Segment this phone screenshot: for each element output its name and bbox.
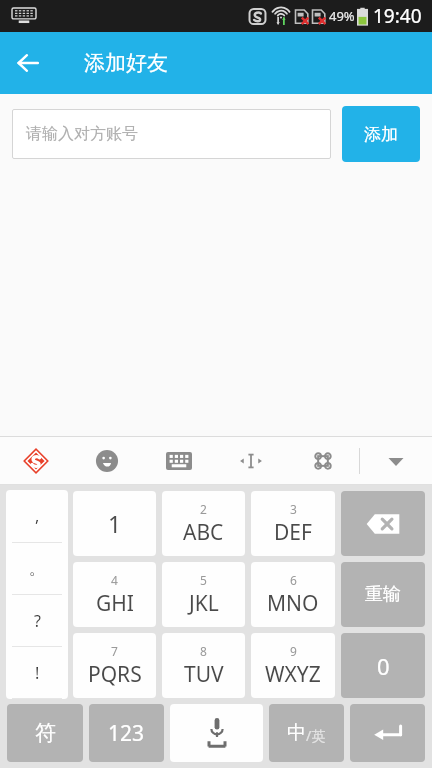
button[interactable]: Keyboard layout bbox=[143, 437, 215, 484]
staticText: 0 bbox=[377, 651, 390, 681]
button[interactable]: 重输 bbox=[341, 562, 425, 627]
button[interactable]: 9 bbox=[251, 633, 335, 698]
button[interactable]: Hide keyboard bbox=[360, 437, 432, 484]
button[interactable]: Enter bbox=[350, 704, 425, 762]
button[interactable]: 中英切换 bbox=[269, 704, 344, 762]
staticText: 符 bbox=[35, 720, 56, 746]
button[interactable]: 0 bbox=[341, 633, 425, 698]
button[interactable]: 添加 bbox=[342, 106, 420, 162]
button[interactable]: 5 bbox=[162, 562, 245, 627]
staticText: /英 bbox=[306, 726, 326, 745]
button[interactable]: Back bbox=[0, 32, 56, 94]
button[interactable]: 8 bbox=[162, 633, 245, 698]
staticText: DEF bbox=[274, 518, 312, 547]
staticText: 7 bbox=[111, 643, 118, 659]
staticText: , bbox=[35, 505, 40, 527]
staticText: 添加好友 bbox=[84, 50, 168, 76]
staticText: PQRS bbox=[88, 660, 142, 689]
staticText: JKL bbox=[189, 589, 219, 618]
staticText: ? bbox=[34, 610, 41, 632]
button[interactable]: Delete bbox=[341, 491, 425, 556]
button[interactable]: , bbox=[6, 490, 68, 542]
staticText: 1 bbox=[108, 508, 122, 539]
button[interactable]: Sogou input bbox=[0, 437, 71, 484]
button[interactable]: 7 bbox=[73, 633, 156, 698]
staticText: 中 bbox=[287, 721, 306, 745]
button[interactable]: 3 bbox=[251, 491, 335, 556]
button[interactable]: 1 bbox=[73, 491, 156, 556]
staticText: ! bbox=[35, 662, 40, 684]
staticText: 重输 bbox=[365, 583, 401, 606]
staticText: 6 bbox=[290, 572, 297, 588]
staticText: 请输入对方账号 bbox=[26, 124, 138, 144]
button[interactable]: 请输入对方账号 bbox=[12, 109, 331, 159]
staticText: 8 bbox=[200, 643, 207, 659]
staticText: 49% bbox=[329, 7, 355, 25]
staticText: 9 bbox=[290, 643, 297, 659]
button[interactable]: 。 bbox=[6, 543, 68, 594]
button[interactable]: 123 bbox=[89, 704, 164, 762]
button[interactable]: Move cursor bbox=[215, 437, 287, 484]
button[interactable]: Shortcuts bbox=[287, 437, 359, 484]
button[interactable]: ! bbox=[6, 647, 68, 698]
staticText: ABC bbox=[183, 518, 224, 547]
staticText: 。 bbox=[29, 559, 45, 579]
button[interactable]: Voice input and space bbox=[170, 704, 263, 762]
button[interactable]: 2 bbox=[162, 491, 245, 556]
button[interactable]: 符号 bbox=[7, 704, 83, 762]
staticText: GHI bbox=[96, 589, 134, 618]
staticText: WXYZ bbox=[265, 660, 321, 689]
button[interactable]: 6 bbox=[251, 562, 335, 627]
button[interactable]: ? bbox=[6, 595, 68, 646]
staticText: 5 bbox=[200, 572, 207, 588]
staticText: 4 bbox=[111, 572, 118, 588]
button[interactable]: 4 bbox=[73, 562, 156, 627]
staticText: 123 bbox=[108, 719, 145, 748]
staticText: 19:40 bbox=[373, 3, 422, 29]
staticText: MNO bbox=[267, 589, 319, 618]
staticText: 2 bbox=[200, 501, 207, 517]
button[interactable]: Emoji bbox=[71, 437, 143, 484]
staticText: 3 bbox=[290, 501, 297, 517]
staticText: TUV bbox=[184, 660, 224, 689]
staticText: 添加 bbox=[364, 124, 398, 145]
